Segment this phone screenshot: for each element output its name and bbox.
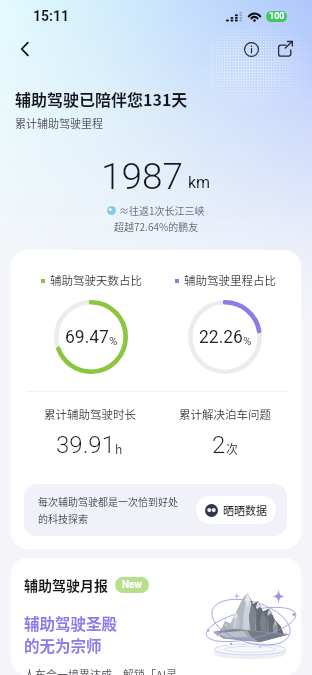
staticText: 辅助驾驶圣殿 的无为宗师 (24, 612, 118, 656)
staticText: 累计辅助驾驶里程 (15, 115, 103, 131)
staticText: 每次辅助驾驶都是一次恰到好处的科技探索 (38, 494, 186, 526)
staticText: 辅助驾驶里程占比 (184, 272, 276, 289)
staticText: 超越72.64%的鹏友 (114, 219, 199, 233)
staticText: 人车合一境界达成，解锁「AI灵 (24, 666, 177, 675)
staticText: 69.47 (65, 327, 109, 348)
staticText: ≈往返1次长江三峡 (119, 203, 205, 217)
staticText: 累计解决泊车问题 (179, 406, 271, 423)
staticText: h (115, 440, 123, 457)
staticText: New (122, 579, 142, 591)
staticText: km (188, 173, 211, 192)
staticText: 晒晒数据 (223, 502, 267, 518)
staticText: 100 (269, 11, 285, 22)
staticText: 1987 (101, 155, 184, 198)
staticText: 辅助驾驶天数占比 (50, 272, 142, 289)
button[interactable]: 晒晒数据 (196, 496, 276, 524)
staticText: 次 (226, 440, 239, 457)
staticText: % (243, 334, 252, 347)
button[interactable]: Info (236, 34, 266, 64)
staticText: 辅助驾驶已陪伴您131天 (15, 87, 188, 110)
staticText: 15:11 (33, 8, 70, 24)
button[interactable]: Back (8, 32, 42, 66)
button[interactable]: Share (270, 34, 300, 64)
staticText: 39.91 (56, 431, 115, 459)
staticText: 辅助驾驶月报 (24, 575, 108, 595)
staticText: 22.26 (199, 327, 243, 348)
staticText: % (109, 334, 118, 347)
staticText: 2 (212, 431, 226, 459)
staticText: 累计辅助驾驶时长 (44, 406, 136, 423)
